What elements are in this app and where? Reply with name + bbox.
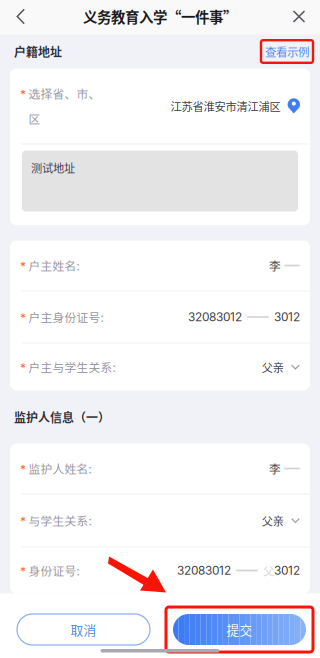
staticText: 与学生关系: bbox=[28, 512, 91, 529]
staticText: 户籍地址 bbox=[14, 43, 62, 60]
staticText: 户主与学生关系: bbox=[28, 358, 115, 375]
button[interactable]: * bbox=[10, 547, 310, 593]
staticText: 32083012 bbox=[188, 310, 242, 324]
button[interactable]: 提交 bbox=[173, 614, 306, 645]
staticText: 户主姓名: bbox=[28, 257, 79, 274]
staticText: * bbox=[20, 462, 26, 476]
staticText: * bbox=[20, 514, 26, 528]
button[interactable]: * bbox=[10, 240, 310, 290]
button[interactable]: 查看示例 bbox=[261, 40, 313, 63]
staticText: 选择省、市、 bbox=[28, 85, 100, 102]
staticText: 监护人姓名: bbox=[28, 460, 91, 477]
button[interactable]: * bbox=[10, 494, 310, 546]
button[interactable]: Back bbox=[0, 0, 42, 34]
staticText: 父 bbox=[263, 562, 274, 579]
staticText: * bbox=[20, 360, 26, 375]
staticText: 父亲 bbox=[262, 512, 284, 529]
staticText: * bbox=[20, 310, 26, 325]
staticText: 提交 bbox=[226, 620, 252, 639]
staticText: * bbox=[20, 87, 26, 101]
staticText: 江苏省淮安市清江浦区 bbox=[171, 98, 281, 114]
staticText: 取消 bbox=[70, 620, 96, 639]
button[interactable]: Close bbox=[278, 0, 320, 34]
button[interactable]: * bbox=[10, 291, 310, 342]
staticText: 李 bbox=[269, 257, 281, 274]
staticText: * bbox=[20, 564, 26, 578]
button[interactable]: 取消 bbox=[17, 614, 150, 645]
staticText: 32083012 bbox=[177, 563, 231, 578]
staticText: 3012 bbox=[274, 563, 300, 578]
staticText: 义务教育入学“一件事” bbox=[83, 6, 237, 27]
staticText: 3012 bbox=[274, 310, 300, 324]
staticText: 测试地址 bbox=[31, 159, 75, 176]
button[interactable]: * bbox=[10, 343, 310, 390]
staticText: 区 bbox=[28, 110, 40, 127]
staticText: 父亲 bbox=[262, 359, 284, 375]
staticText: 身份证号: bbox=[28, 562, 79, 579]
staticText: 户主身份证号: bbox=[28, 308, 103, 325]
button[interactable]: * bbox=[10, 443, 310, 493]
staticText: * bbox=[20, 259, 26, 273]
staticText: 李 bbox=[269, 460, 281, 477]
staticText: 监护人信息（一） bbox=[14, 408, 110, 426]
button[interactable]: * bbox=[10, 68, 310, 143]
staticText: 查看示例 bbox=[265, 43, 309, 60]
